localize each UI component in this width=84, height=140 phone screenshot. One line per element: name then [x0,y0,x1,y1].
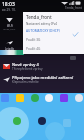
button[interactable]: Nastaveni [75,94,83,102]
staticText: Wi-Fi [7,24,13,28]
button[interactable]: Kalendar [1,94,9,102]
button[interactable]: Fotoaparat [38,117,46,125]
button[interactable]: Poznamky [16,94,24,102]
button[interactable]: Spravovat [70,56,76,60]
staticText: Tenda_front [65,6,82,10]
staticText: Použít 4G [26,47,41,51]
staticText: AUTOMATICKY (DHCP) [26,29,60,33]
button[interactable]: Fotky [45,94,53,102]
button[interactable]: Připojeno jako mediální zařízení [3,74,82,85]
staticText: Tři nepřečtené zprávy [12,67,43,71]
button[interactable]: Hudba [60,94,68,102]
button[interactable]: Letadlo [1,39,18,54]
staticText: 18:03 [2,1,15,8]
button[interactable]: Media [0,50,24,55]
staticText: Tenda_front [26,14,52,20]
staticText: Vypnuto [5,51,14,54]
button[interactable]: Nové zprávy 4 [3,61,82,72]
staticText: Letadlo [5,47,15,51]
staticText: Klepnutím změníte [12,80,39,84]
staticText: po 29. 10. [2,8,16,11]
button[interactable]: Zpravy [63,119,71,127]
button[interactable]: Telefon [13,117,21,125]
staticText: Připojeno jako mediální zařízení [12,75,73,80]
staticText: Nové zprávy 4 [12,62,39,67]
staticText: Nastavení adresy IPv4 [26,22,58,26]
button[interactable]: Wi-Fi [1,16,18,31]
button[interactable]: Obchod [31,94,39,102]
staticText: Použít 3G [26,38,41,42]
staticText: Tenda_front [3,28,16,31]
